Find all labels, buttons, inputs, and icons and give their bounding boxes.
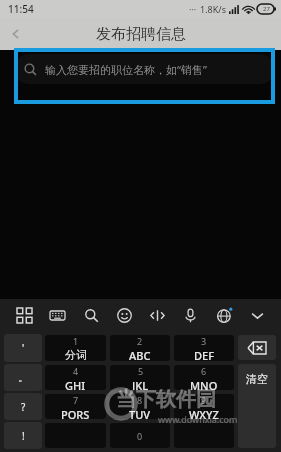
button[interactable]: 3 <box>174 335 234 361</box>
button[interactable]: Backspace <box>238 335 276 360</box>
staticText: WXYZ <box>189 407 219 419</box>
button[interactable]: ! <box>4 422 42 449</box>
staticText: GHI <box>65 378 86 390</box>
staticText: 11:54 <box>8 2 34 16</box>
button[interactable]: 6 <box>174 365 234 390</box>
button[interactable]: 8 <box>110 394 170 419</box>
staticText: 8 <box>137 394 143 406</box>
staticText: www.downxia.com <box>158 413 238 425</box>
staticText: 1 <box>73 335 79 347</box>
staticText: DEF <box>194 348 214 361</box>
button[interactable]: Hide <box>243 301 271 329</box>
button[interactable]: 2 <box>110 335 170 361</box>
button[interactable]: Apps <box>10 301 38 329</box>
staticText: 清空 <box>246 372 268 386</box>
button[interactable]: 1 <box>45 335 106 361</box>
button[interactable]: Back <box>0 18 32 50</box>
button[interactable]: ' <box>4 334 42 362</box>
button[interactable]: 。 <box>4 364 42 391</box>
button[interactable]: ? <box>4 393 42 420</box>
staticText: 发布招聘信息 <box>96 25 186 44</box>
button[interactable]: Voice <box>176 301 204 329</box>
staticText: PQRS <box>61 407 90 419</box>
staticText: MNO <box>190 378 218 390</box>
button[interactable]: 4 <box>45 365 106 390</box>
staticText: ' <box>22 341 25 355</box>
staticText: ! <box>22 429 25 443</box>
staticText: 输入您要招的职位名称，如“销售” <box>45 62 207 77</box>
staticText: 4 <box>73 365 79 377</box>
staticText: 27 <box>263 5 270 13</box>
staticText: 3 <box>201 335 207 347</box>
button[interactable]: Language <box>210 301 238 329</box>
staticText: ? <box>21 400 26 414</box>
staticText: 2 <box>137 335 143 347</box>
staticText: 。 <box>18 371 28 384</box>
button[interactable]: 输入您要招的职位名称，如“销售” <box>14 54 275 84</box>
button[interactable]: 7 <box>45 394 106 419</box>
staticText: ··· <box>189 3 197 15</box>
staticText: TUV <box>129 407 151 419</box>
staticText: 当下软件园 <box>116 387 216 412</box>
staticText: ABC <box>129 348 151 361</box>
staticText: 6 <box>201 365 207 377</box>
button[interactable]: 9 <box>174 394 234 419</box>
staticText: 1.8K/s <box>200 3 226 15</box>
button[interactable]: 5 <box>110 365 170 390</box>
button[interactable]: Search <box>77 301 105 329</box>
button[interactable]: Emoji <box>110 301 138 329</box>
button[interactable]: 清空 <box>238 364 276 448</box>
button[interactable]: Keyboard <box>43 301 71 329</box>
button[interactable]: Cursor <box>143 301 171 329</box>
button[interactable]: 0 <box>110 423 170 448</box>
staticText: 5 <box>138 365 144 377</box>
staticText: JKL <box>132 378 149 390</box>
staticText: 9 <box>201 394 207 406</box>
staticText: 0 <box>137 430 143 442</box>
staticText: 7 <box>73 394 79 406</box>
staticText: 分词 <box>65 348 87 361</box>
